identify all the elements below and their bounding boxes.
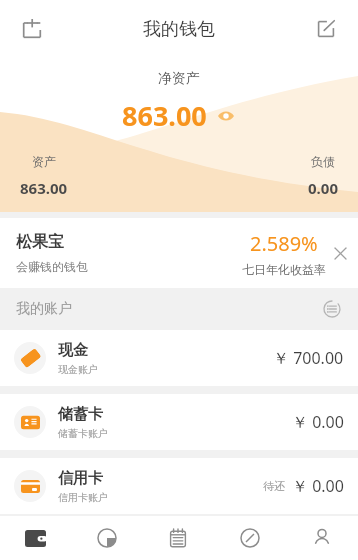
staticText: 负债 — [311, 154, 335, 169]
staticText: 我的钱包 — [143, 18, 215, 41]
staticText: ￥ 0.00 — [292, 411, 344, 433]
staticText: ￥ 0.00 — [292, 475, 344, 497]
button[interactable]: Toggle balance visibility — [216, 106, 236, 126]
button[interactable]: Sort accounts — [318, 295, 346, 323]
button[interactable]: 信用卡 — [0, 458, 358, 514]
staticText: 资产 — [32, 154, 56, 169]
staticText: 现金账户 — [58, 363, 98, 376]
staticText: 我的账户 — [16, 300, 72, 318]
staticText: 储蓄卡账户 — [58, 427, 108, 440]
button[interactable]: Wallet — [0, 516, 71, 560]
staticText: 2.589% — [250, 230, 318, 257]
button[interactable]: 松果宝 — [0, 218, 358, 288]
button[interactable]: 现金 — [0, 330, 358, 386]
staticText: 信用卡 — [58, 469, 103, 488]
button[interactable]: Add — [14, 11, 50, 47]
staticText: 0.00 — [308, 178, 338, 198]
staticText: 待还 — [263, 479, 285, 493]
staticText: 现金 — [58, 341, 88, 360]
button[interactable]: 储蓄卡 — [0, 394, 358, 450]
button[interactable]: Edit — [308, 11, 344, 47]
staticText: 863.00 — [122, 97, 207, 134]
button[interactable]: Records — [142, 516, 214, 560]
staticText: 松果宝 — [16, 232, 64, 252]
staticText: 863.00 — [20, 178, 68, 198]
button[interactable]: Close — [327, 240, 353, 266]
staticText: 会赚钱的钱包 — [16, 259, 88, 274]
staticText: 净资产 — [158, 70, 200, 88]
button[interactable]: Discover — [214, 516, 286, 560]
button[interactable]: Statistics — [71, 516, 142, 560]
staticText: 七日年化收益率 — [242, 262, 326, 277]
staticText: ￥ 700.00 — [273, 347, 344, 369]
staticText: 储蓄卡 — [58, 405, 103, 424]
staticText: 信用卡账户 — [58, 491, 108, 504]
button[interactable]: Profile — [286, 516, 358, 560]
